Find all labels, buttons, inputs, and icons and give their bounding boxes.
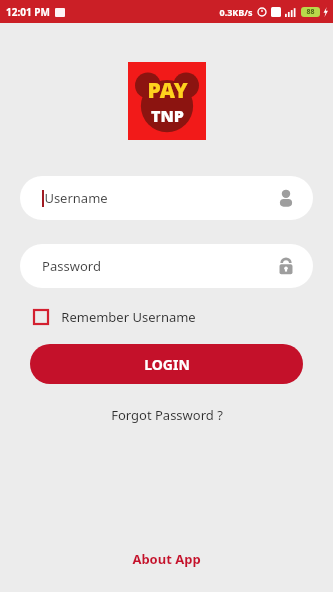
- staticText: Remember Username: [61, 308, 196, 326]
- other: Username: [277, 189, 295, 207]
- staticText: Forgot Password ?: [111, 406, 223, 424]
- staticText: 0.3KB/s: [219, 6, 253, 18]
- button[interactable]: About App: [126, 544, 207, 574]
- other: Password: [277, 257, 295, 275]
- button[interactable]: Forgot Password ?: [105, 400, 229, 430]
- staticText: TNP: [151, 105, 184, 127]
- button[interactable]: Username: [20, 176, 313, 220]
- button[interactable]: Password: [20, 244, 313, 288]
- staticText: LOGIN: [144, 355, 190, 374]
- staticText: 12:01 PM: [6, 5, 50, 19]
- button[interactable]: Remember Username: [33, 308, 196, 326]
- staticText: PAY: [147, 76, 188, 105]
- staticText: Password: [42, 257, 101, 275]
- button[interactable]: LOGIN: [30, 344, 303, 384]
- staticText: Username: [44, 189, 108, 207]
- staticText: About App: [132, 550, 201, 568]
- staticText: 88: [306, 7, 315, 17]
